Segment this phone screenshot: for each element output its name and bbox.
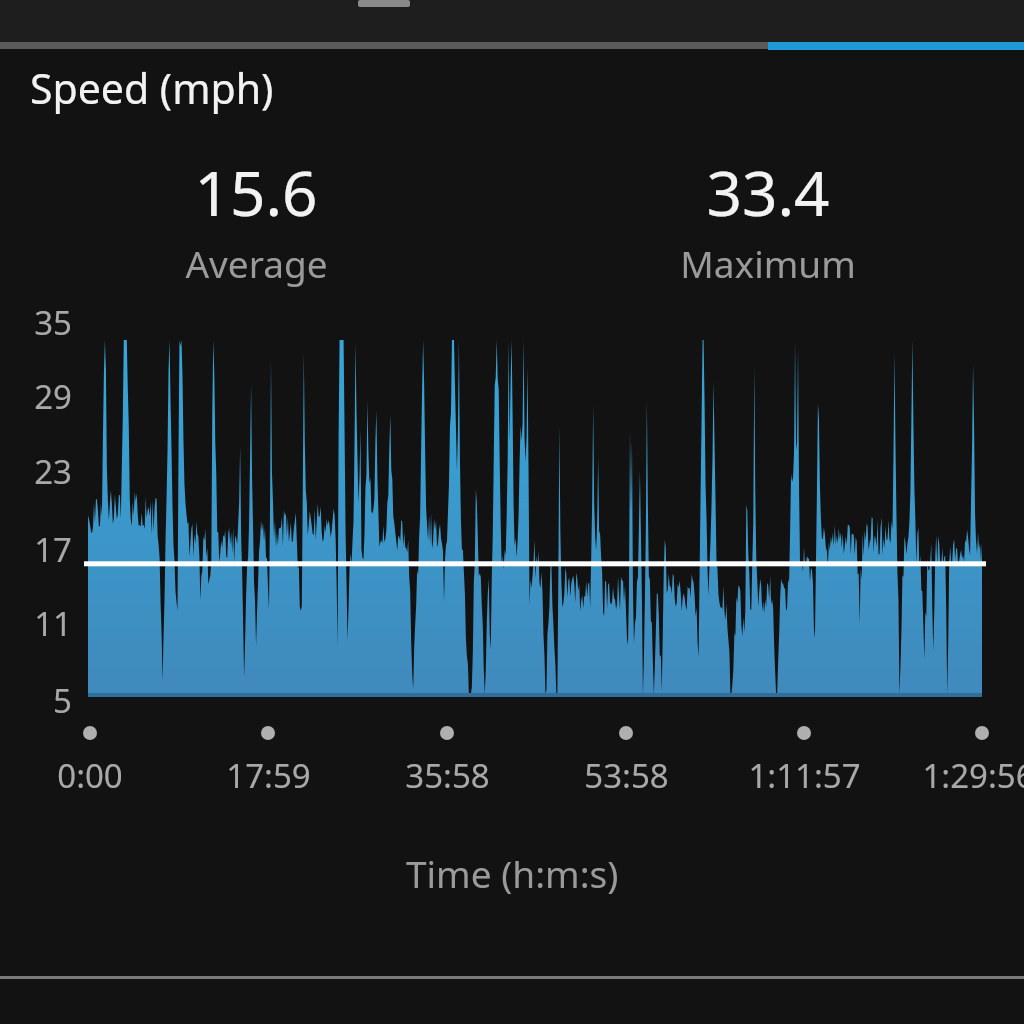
staticText: 35 — [34, 300, 72, 345]
staticText: 5 — [53, 678, 72, 723]
staticText: 17:59 — [226, 753, 311, 798]
staticText: Average — [185, 238, 328, 288]
staticText: Time (h:m:s) — [406, 848, 619, 898]
staticText: Maximum — [680, 238, 856, 288]
staticText: 17 — [34, 527, 72, 572]
staticText: 1:11:57 — [748, 753, 861, 798]
staticText: 53:58 — [584, 753, 669, 798]
button[interactable]: 15.6 — [0, 150, 512, 288]
staticText: Speed (mph) — [30, 60, 274, 116]
staticText: 33.4 — [706, 150, 830, 234]
staticText: 11 — [34, 601, 72, 646]
staticText: 29 — [34, 374, 72, 419]
staticText: 23 — [34, 449, 72, 494]
staticText: 15.6 — [194, 150, 318, 234]
staticText: 1:29:56 — [922, 753, 1024, 798]
staticText: 35:58 — [405, 753, 490, 798]
staticText: 0:00 — [57, 753, 123, 798]
button[interactable]: 33.4 — [512, 150, 1024, 288]
